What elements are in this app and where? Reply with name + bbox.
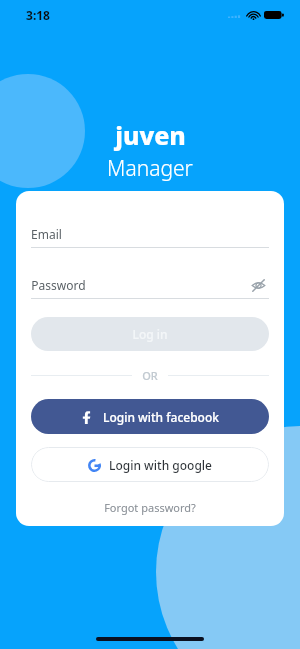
staticText: Forgot password? [104,500,196,515]
staticText: Login with google [109,457,212,473]
button[interactable]: Login with facebook [31,399,269,434]
staticText: Login with facebook [103,409,219,425]
button[interactable]: Password [31,272,269,298]
button[interactable]: Email [31,221,269,247]
button[interactable]: Show password [247,274,269,296]
staticText: Log in [132,326,168,342]
staticText: Manager [107,154,193,183]
staticText: 3:18 [26,7,50,23]
staticText: juven [115,118,186,152]
staticText: Password [31,277,86,293]
button[interactable]: Login with google [31,447,269,482]
button[interactable]: Log in [31,317,269,351]
staticText: OR [142,368,158,383]
button[interactable]: Forgot password? [31,496,269,518]
staticText: Email [31,226,62,242]
